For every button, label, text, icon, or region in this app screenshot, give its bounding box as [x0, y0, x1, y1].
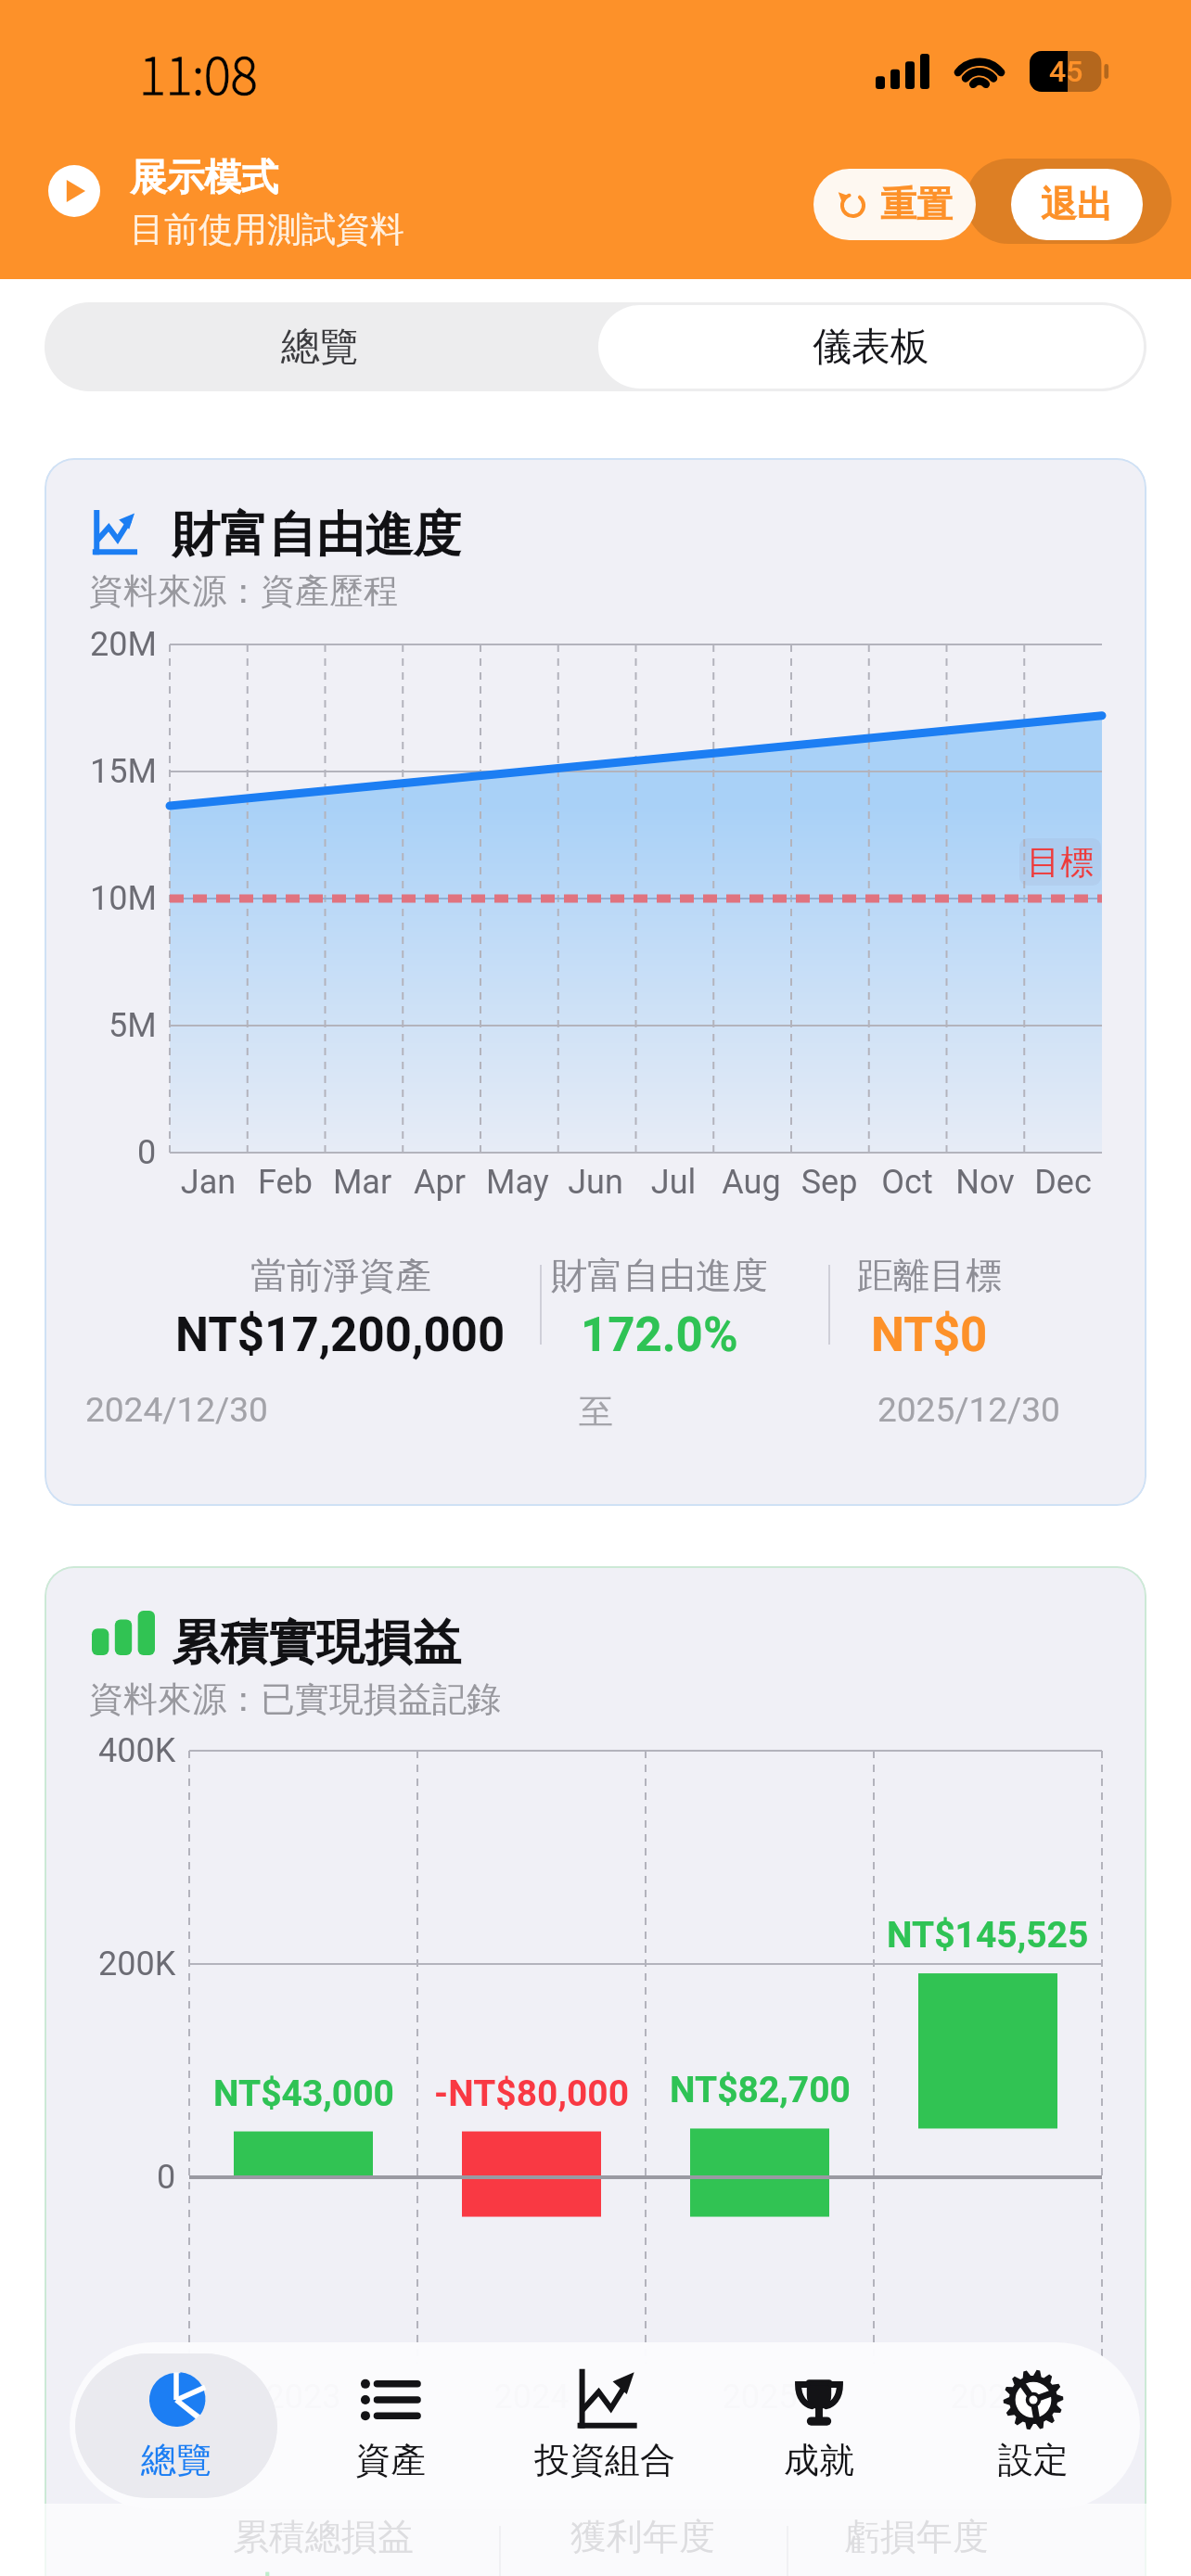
staticText: 資產	[355, 2438, 426, 2482]
button[interactable]: Overview	[75, 2353, 277, 2498]
staticText: 2026	[874, 2378, 1102, 2417]
staticText: 累積實現損益	[172, 1613, 461, 1674]
staticText: 11:08	[139, 35, 258, 109]
staticText: NT$43,000	[213, 2072, 394, 2115]
staticText: 2024/12/30	[85, 1390, 268, 1430]
staticText: Dec	[1024, 1163, 1102, 1202]
staticText: 400K	[98, 1731, 176, 1770]
staticText: 總覽	[141, 2438, 211, 2482]
staticText: 累積總損益	[233, 2514, 414, 2559]
staticText: Jun	[557, 1163, 634, 1202]
staticText: 虧損年度	[844, 2514, 989, 2559]
button[interactable]: Achievements	[717, 2353, 920, 2498]
staticText: Feb	[247, 1163, 324, 1202]
staticText: 距離目標	[857, 1253, 1002, 1298]
staticText: 財富自由進度	[172, 504, 461, 566]
staticText: Mar	[324, 1163, 401, 1202]
button[interactable]: Assets	[288, 2353, 492, 2498]
staticText: 目標	[1027, 841, 1094, 883]
staticText: 2025/12/30	[877, 1390, 1060, 1430]
staticText: 退出	[1041, 182, 1113, 227]
staticText: 200K	[98, 1945, 176, 1983]
staticText: 0	[137, 1133, 157, 1172]
staticText: Jul	[634, 1163, 712, 1202]
staticText: 5M	[109, 1006, 157, 1045]
staticText: 2025	[646, 2378, 874, 2417]
staticText: 總覽	[281, 323, 359, 372]
staticText: NT$82,700	[670, 2069, 851, 2111]
staticText: 展示模式	[130, 154, 278, 200]
staticText: 資料來源：資產歷程	[89, 569, 398, 613]
staticText: 財富自由進度	[551, 1253, 768, 1298]
staticText: Oct	[868, 1163, 946, 1202]
staticText: 45	[1049, 54, 1083, 89]
staticText: 2023	[189, 2378, 417, 2417]
button[interactable]: 重置	[813, 169, 976, 240]
staticText: 資料來源：已實現損益記錄	[89, 1677, 501, 1721]
staticText: 172.0%	[581, 1307, 738, 1363]
button[interactable]: 總覽	[45, 302, 595, 391]
staticText: 2024	[417, 2378, 646, 2417]
staticText: 0	[157, 2158, 176, 2197]
staticText: 10M	[90, 879, 157, 918]
staticText: Nov	[946, 1163, 1024, 1202]
staticText: 獲利年度	[570, 2514, 715, 2559]
button[interactable]: Settings	[931, 2353, 1134, 2498]
staticText: -NT$80,000	[434, 2072, 630, 2115]
staticText: 儀表板	[813, 323, 929, 372]
staticText: 投資組合	[534, 2438, 675, 2482]
staticText: NT$191,225	[191, 2569, 455, 2576]
button[interactable]: 儀表板	[598, 305, 1144, 389]
staticText: Apr	[401, 1163, 479, 1202]
staticText: 15M	[90, 752, 157, 791]
staticText: 當前淨資產	[250, 1253, 431, 1298]
staticText: 設定	[998, 2438, 1069, 2482]
staticText: Sep	[790, 1163, 868, 1202]
staticText: Aug	[712, 1163, 790, 1202]
staticText: NT$145,525	[887, 1914, 1089, 1957]
staticText: NT$17,200,000	[175, 1307, 506, 1363]
button[interactable]: Portfolio	[503, 2353, 706, 2498]
staticText: 至	[579, 1390, 613, 1434]
button[interactable]: 退出	[1011, 169, 1143, 240]
staticText: 20M	[90, 625, 157, 664]
staticText: 成就	[784, 2438, 854, 2482]
staticText: May	[479, 1163, 557, 1202]
staticText: NT$0	[871, 1307, 988, 1363]
staticText: Jan	[170, 1163, 247, 1202]
staticText: 目前使用測試資料	[130, 208, 404, 251]
staticText: 重置	[880, 182, 953, 227]
